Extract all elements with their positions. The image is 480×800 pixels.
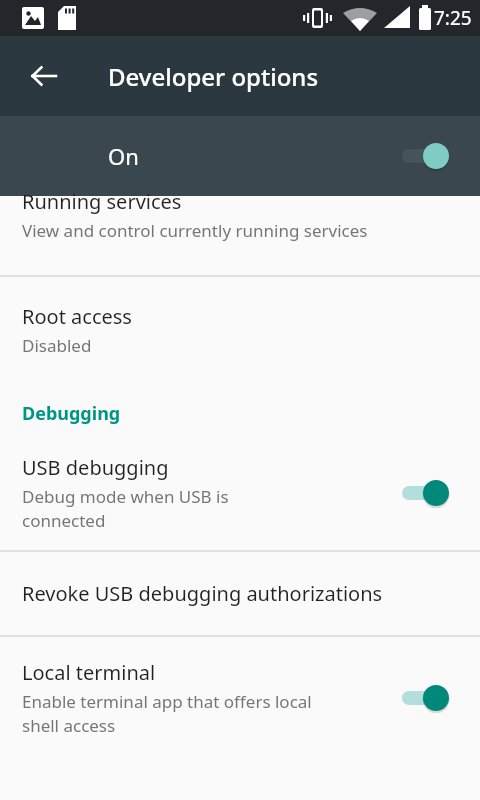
button[interactable]: Local terminal bbox=[0, 637, 480, 755]
staticText: Running services bbox=[22, 188, 182, 215]
button[interactable]: Running services bbox=[0, 196, 480, 275]
staticText: Root access bbox=[22, 303, 132, 330]
staticText: 7:25 bbox=[434, 5, 472, 31]
staticText: Debugging bbox=[22, 401, 121, 426]
staticText: USB debugging bbox=[22, 454, 169, 481]
button[interactable]: Revoke USB debugging authorizations bbox=[0, 552, 480, 635]
staticText: On bbox=[108, 141, 400, 171]
staticText: View and control currently running servi… bbox=[22, 219, 368, 242]
staticText: Enable terminal app that offers local sh… bbox=[22, 690, 312, 737]
button[interactable]: On bbox=[0, 116, 480, 196]
staticText: Disabled bbox=[22, 334, 92, 357]
button[interactable]: Back bbox=[20, 52, 68, 100]
staticText: Debug mode when USB is connected bbox=[22, 485, 229, 532]
staticText: Local terminal bbox=[22, 659, 156, 686]
staticText: Revoke USB debugging authorizations bbox=[22, 580, 383, 607]
staticText: Developer options bbox=[108, 60, 319, 93]
button[interactable]: USB debugging bbox=[0, 440, 480, 550]
button[interactable]: Root access bbox=[0, 277, 480, 383]
